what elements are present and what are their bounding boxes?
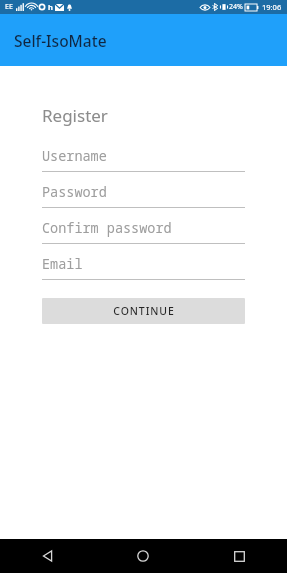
staticText: Username [42,147,107,165]
button[interactable]: Recent apps [191,539,287,573]
button[interactable]: Password [42,176,245,212]
button[interactable]: Home [95,539,191,573]
button[interactable]: CONTINUE [42,298,245,324]
staticText: CONTINUE [113,304,175,318]
staticText: 24% [229,2,243,12]
staticText: Password [42,183,107,201]
staticText: Confirm password [42,219,172,237]
staticText: Register [42,104,108,127]
staticText: h [48,2,53,12]
button[interactable]: Back [0,539,95,573]
button[interactable]: Email [42,248,245,284]
button[interactable]: Username [42,140,245,176]
staticText: Self-IsoMate [14,30,107,51]
button[interactable]: Confirm password [42,212,245,248]
staticText: EE [5,2,13,12]
staticText: 19:06 [262,2,282,12]
staticText: Email [42,255,83,273]
